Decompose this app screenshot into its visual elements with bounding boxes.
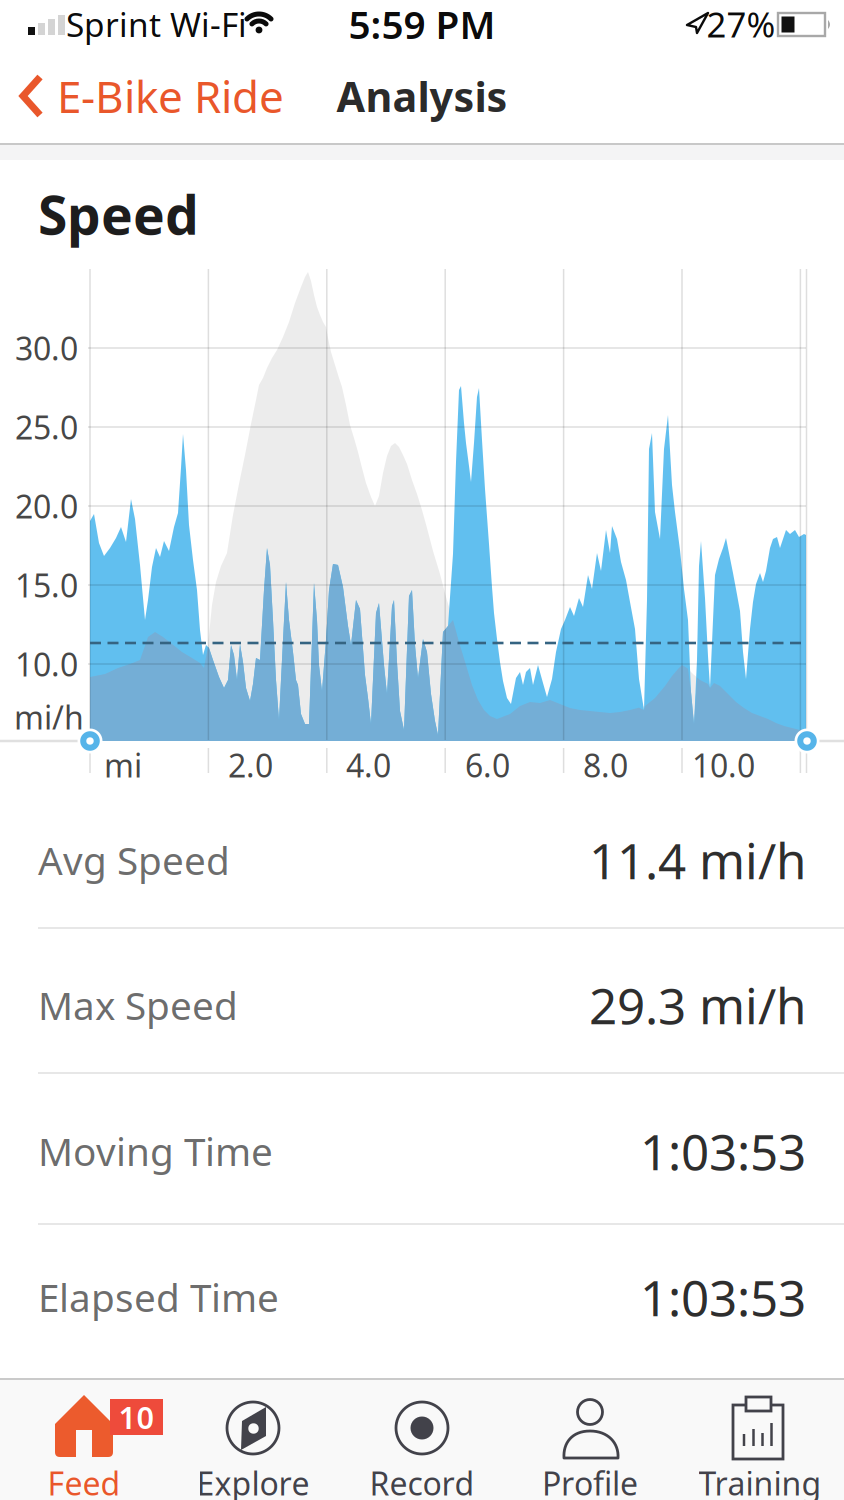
button[interactable]: E-Bike Ride xyxy=(0,0,844,1500)
staticText: 6.0 xyxy=(465,744,510,786)
staticText: mi xyxy=(104,744,142,786)
staticText: Sprint Wi-Fi xyxy=(66,2,247,46)
staticText: E-Bike Ride xyxy=(57,67,284,125)
button[interactable]: Moving Time xyxy=(38,1118,806,1184)
staticText: 29.3 mi/h xyxy=(589,972,806,1038)
staticText: Max Speed xyxy=(38,979,238,1031)
button[interactable]: Elapsed Time xyxy=(38,1264,806,1330)
staticText: 4.0 xyxy=(346,744,391,786)
staticText: 10.0 xyxy=(15,643,78,685)
button[interactable]: Profile xyxy=(0,0,844,1500)
staticText: Analysis xyxy=(336,69,507,123)
button[interactable]: Explore xyxy=(0,0,844,1500)
staticText: 11.4 mi/h xyxy=(589,827,806,893)
staticText: Profile xyxy=(542,1462,638,1500)
staticText: Moving Time xyxy=(38,1125,273,1177)
staticText: 25.0 xyxy=(15,406,78,448)
staticText: 15.0 xyxy=(15,564,78,606)
staticText: Feed xyxy=(47,1462,120,1500)
staticText: 5:59 PM xyxy=(348,0,495,50)
staticText: Record xyxy=(369,1462,474,1500)
staticText: 10 xyxy=(118,1397,154,1437)
staticText: mi/h xyxy=(14,696,84,738)
staticText: 20.0 xyxy=(15,485,78,527)
staticText: 1:03:53 xyxy=(640,1264,806,1330)
staticText: 2.0 xyxy=(228,744,273,786)
staticText: Elapsed Time xyxy=(38,1271,279,1323)
staticText: 10.0 xyxy=(692,744,755,786)
staticText: 27% xyxy=(706,1,775,47)
staticText: Training xyxy=(698,1462,821,1500)
staticText: 8.0 xyxy=(583,744,628,786)
button[interactable]: Avg Speed xyxy=(38,827,806,893)
button[interactable]: 10 xyxy=(0,0,844,1500)
staticText: 1:03:53 xyxy=(640,1118,806,1184)
button[interactable]: Training xyxy=(0,0,844,1500)
button[interactable]: Max Speed xyxy=(38,972,806,1038)
staticText: Speed xyxy=(38,179,199,249)
staticText: 30.0 xyxy=(15,327,78,369)
staticText: Explore xyxy=(196,1462,309,1500)
button[interactable]: Record xyxy=(0,0,844,1500)
staticText: Avg Speed xyxy=(38,834,230,886)
